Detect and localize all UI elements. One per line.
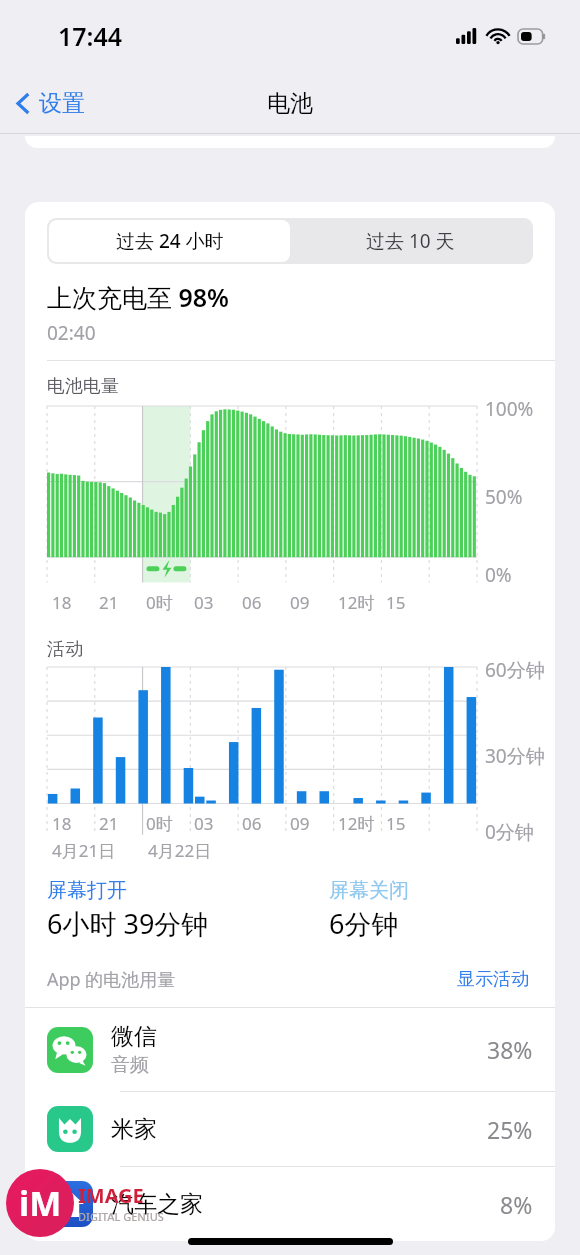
staticText: 电池 <box>267 89 313 118</box>
staticText: 音频 <box>111 1053 149 1077</box>
staticText: 02:40 <box>47 320 96 346</box>
button[interactable]: 过去 10 天 <box>290 220 531 262</box>
staticText: 8% <box>500 1189 533 1220</box>
staticText: 屏幕打开 <box>47 878 127 903</box>
staticText: iM <box>19 1180 62 1226</box>
staticText: 0时 <box>146 812 173 835</box>
staticText: DIGITAL GENIUS <box>78 1209 164 1224</box>
button[interactable]: 微信 <box>25 1008 555 1091</box>
staticText: 30分钟 <box>485 743 545 769</box>
staticText: 18 <box>52 812 72 835</box>
staticText: 06 <box>242 591 262 614</box>
staticText: 6分钟 <box>329 905 399 942</box>
staticText: 100% <box>485 396 534 422</box>
staticText: 12时 <box>338 812 375 835</box>
staticText: 15 <box>386 591 406 614</box>
button[interactable]: 设置 <box>0 83 97 124</box>
button[interactable]: 显示活动 <box>453 964 533 995</box>
staticText: 屏幕关闭 <box>329 878 409 903</box>
staticText: IMAGE <box>78 1182 144 1209</box>
staticText: 21 <box>99 812 119 835</box>
staticText: 米家 <box>111 1115 157 1144</box>
staticText: 汽车之家 <box>111 1190 203 1219</box>
button[interactable]: 汽车之家 <box>25 1167 555 1241</box>
staticText: 6小时 39分钟 <box>47 905 209 942</box>
staticText: 09 <box>290 812 310 835</box>
staticText: 09 <box>290 591 310 614</box>
staticText: 50% <box>485 484 523 510</box>
button[interactable]: 过去 24 小时 <box>49 220 290 262</box>
button[interactable]: 米家 <box>25 1092 555 1166</box>
staticText: 4月22日 <box>148 839 212 862</box>
staticText: 60分钟 <box>485 657 545 683</box>
staticText: 18 <box>52 591 72 614</box>
staticText: 0分钟 <box>485 819 534 845</box>
staticText: 06 <box>242 812 262 835</box>
staticText: 微信 <box>111 1022 157 1051</box>
staticText: 过去 10 天 <box>366 228 455 254</box>
staticText: 03 <box>194 812 214 835</box>
staticText: App 的电池用量 <box>47 967 453 992</box>
staticText: 25% <box>487 1114 533 1145</box>
staticText: 03 <box>194 591 214 614</box>
staticText: 电池电量 <box>47 375 119 398</box>
staticText: 15 <box>386 812 406 835</box>
staticText: 4月21日 <box>52 839 116 862</box>
staticText: 过去 24 小时 <box>116 228 224 254</box>
staticText: 上次充电至 98% <box>47 280 229 314</box>
staticText: 0时 <box>146 591 173 614</box>
staticText: 21 <box>99 591 119 614</box>
staticText: 38% <box>487 1034 533 1065</box>
staticText: 活动 <box>47 638 83 661</box>
staticText: 12时 <box>338 591 375 614</box>
staticText: 显示活动 <box>457 968 529 991</box>
staticText: 17:44 <box>58 19 123 53</box>
staticText: 设置 <box>39 89 85 118</box>
staticText: 0% <box>485 562 512 588</box>
